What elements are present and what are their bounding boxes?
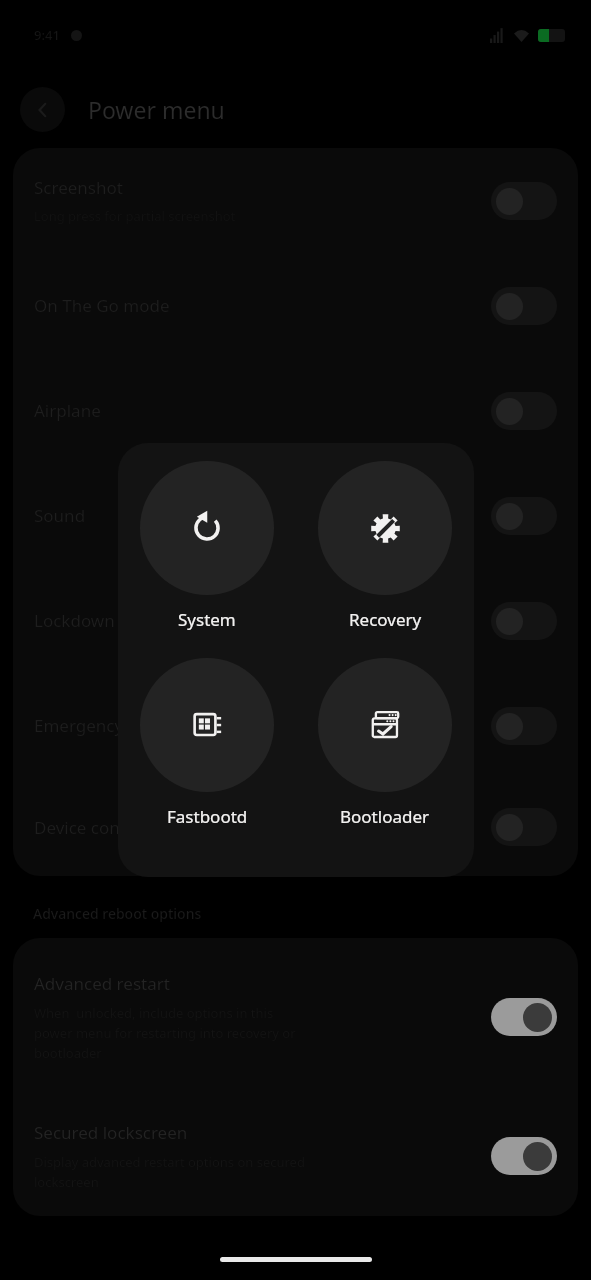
- staticText: Recovery: [349, 608, 422, 631]
- staticText: Screenshot: [34, 176, 123, 199]
- staticText: Emergency: [34, 714, 124, 737]
- staticText: 9:41: [34, 26, 60, 44]
- button[interactable]: Recovery: [296, 461, 474, 631]
- button[interactable]: Toggle: [491, 998, 557, 1036]
- button[interactable]: Bootloader: [296, 658, 474, 828]
- button[interactable]: Toggle: [491, 1137, 557, 1175]
- staticText: Device controls: [34, 816, 156, 839]
- staticText: Advanced restart: [34, 972, 170, 995]
- button[interactable]: Toggle: [491, 287, 557, 325]
- button[interactable]: Emergency: [13, 673, 578, 778]
- button[interactable]: Toggle: [491, 602, 557, 640]
- button[interactable]: Toggle: [491, 707, 557, 745]
- button[interactable]: Toggle: [491, 182, 557, 220]
- button[interactable]: System: [118, 461, 296, 631]
- staticText: Advanced reboot options: [33, 904, 202, 923]
- button[interactable]: Toggle: [491, 392, 557, 430]
- staticText: Airplane: [34, 399, 101, 422]
- staticText: Lockdown: [34, 609, 115, 632]
- staticText: Power menu: [88, 94, 225, 125]
- button[interactable]: Sound: [13, 463, 578, 568]
- button[interactable]: Screenshot: [13, 148, 578, 253]
- button[interactable]: Airplane: [13, 358, 578, 463]
- button[interactable]: Secured lockscreen: [13, 1096, 578, 1216]
- button[interactable]: Toggle: [491, 808, 557, 846]
- button[interactable]: On The Go mode: [13, 253, 578, 358]
- staticText: Sound: [34, 504, 86, 527]
- button[interactable]: Toggle: [491, 497, 557, 535]
- staticText: Bootloader: [340, 805, 430, 828]
- staticText: Fastbootd: [167, 805, 248, 828]
- button[interactable]: Fastbootd: [118, 658, 296, 828]
- button[interactable]: Device controls: [13, 778, 578, 876]
- button[interactable]: Lockdown: [13, 568, 578, 673]
- staticText: System: [178, 608, 236, 631]
- staticText: On The Go mode: [34, 294, 170, 317]
- staticText: Secured lockscreen: [34, 1121, 188, 1144]
- button[interactable]: Back: [20, 87, 65, 132]
- button[interactable]: Advanced restart: [13, 938, 578, 1096]
